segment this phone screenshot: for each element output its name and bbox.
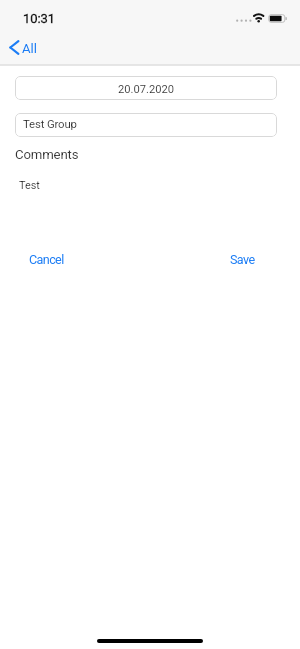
staticText: Test Group — [23, 117, 77, 130]
staticText: Cancel — [29, 252, 64, 267]
button[interactable]: Save — [220, 246, 265, 273]
button[interactable]: 20.07.2020 — [15, 76, 277, 100]
staticText: Test — [19, 179, 40, 192]
button[interactable]: Cancel — [19, 246, 74, 273]
button[interactable]: Test Group — [15, 113, 277, 137]
staticText: Comments — [15, 147, 79, 162]
staticText: 10:31 — [23, 11, 56, 26]
staticText: 20.07.2020 — [15, 83, 277, 96]
button[interactable]: Back to All — [4, 33, 40, 62]
staticText: Save — [230, 252, 255, 267]
staticText: All — [22, 41, 38, 56]
